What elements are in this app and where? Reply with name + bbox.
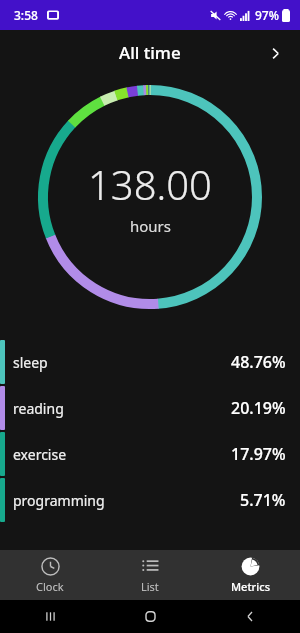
button[interactable]: All time [0, 30, 300, 75]
button[interactable]: sleep [0, 339, 300, 385]
staticText: 138.00 [88, 157, 212, 211]
staticText: programming [13, 491, 105, 510]
staticText: All time [119, 41, 181, 64]
button[interactable]: Home [100, 600, 200, 633]
staticText: hours [130, 216, 171, 236]
staticText: 20.19% [231, 397, 286, 419]
button[interactable]: reading [0, 385, 300, 431]
staticText: Metrics [231, 579, 270, 594]
staticText: sleep [13, 353, 48, 372]
button[interactable]: List [100, 550, 200, 600]
staticText: 48.76% [231, 351, 286, 373]
staticText: 17.97% [231, 443, 286, 465]
staticText: 97% [255, 7, 279, 23]
staticText: Clock [36, 579, 64, 594]
staticText: List [141, 579, 159, 594]
button[interactable]: Recents [0, 600, 100, 633]
staticText: 5.71% [240, 489, 286, 511]
button[interactable]: Back [200, 600, 300, 633]
staticText: exercise [13, 445, 67, 464]
button[interactable]: programming [0, 477, 300, 523]
button[interactable]: exercise [0, 431, 300, 477]
button[interactable]: Metrics [200, 550, 300, 600]
button[interactable]: Clock [0, 550, 100, 600]
staticText: reading [13, 399, 64, 418]
staticText: 3:58 [14, 7, 38, 23]
button[interactable]: Next period [258, 36, 292, 70]
